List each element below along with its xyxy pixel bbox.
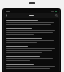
button[interactable]: Search — [55, 14, 58, 17]
button[interactable] — [4, 63, 59, 71]
button[interactable] — [4, 27, 59, 37]
button[interactable] — [4, 55, 59, 63]
button[interactable]: Back — [5, 14, 8, 17]
button[interactable] — [4, 19, 59, 27]
button[interactable] — [4, 37, 59, 45]
button[interactable] — [4, 45, 59, 55]
